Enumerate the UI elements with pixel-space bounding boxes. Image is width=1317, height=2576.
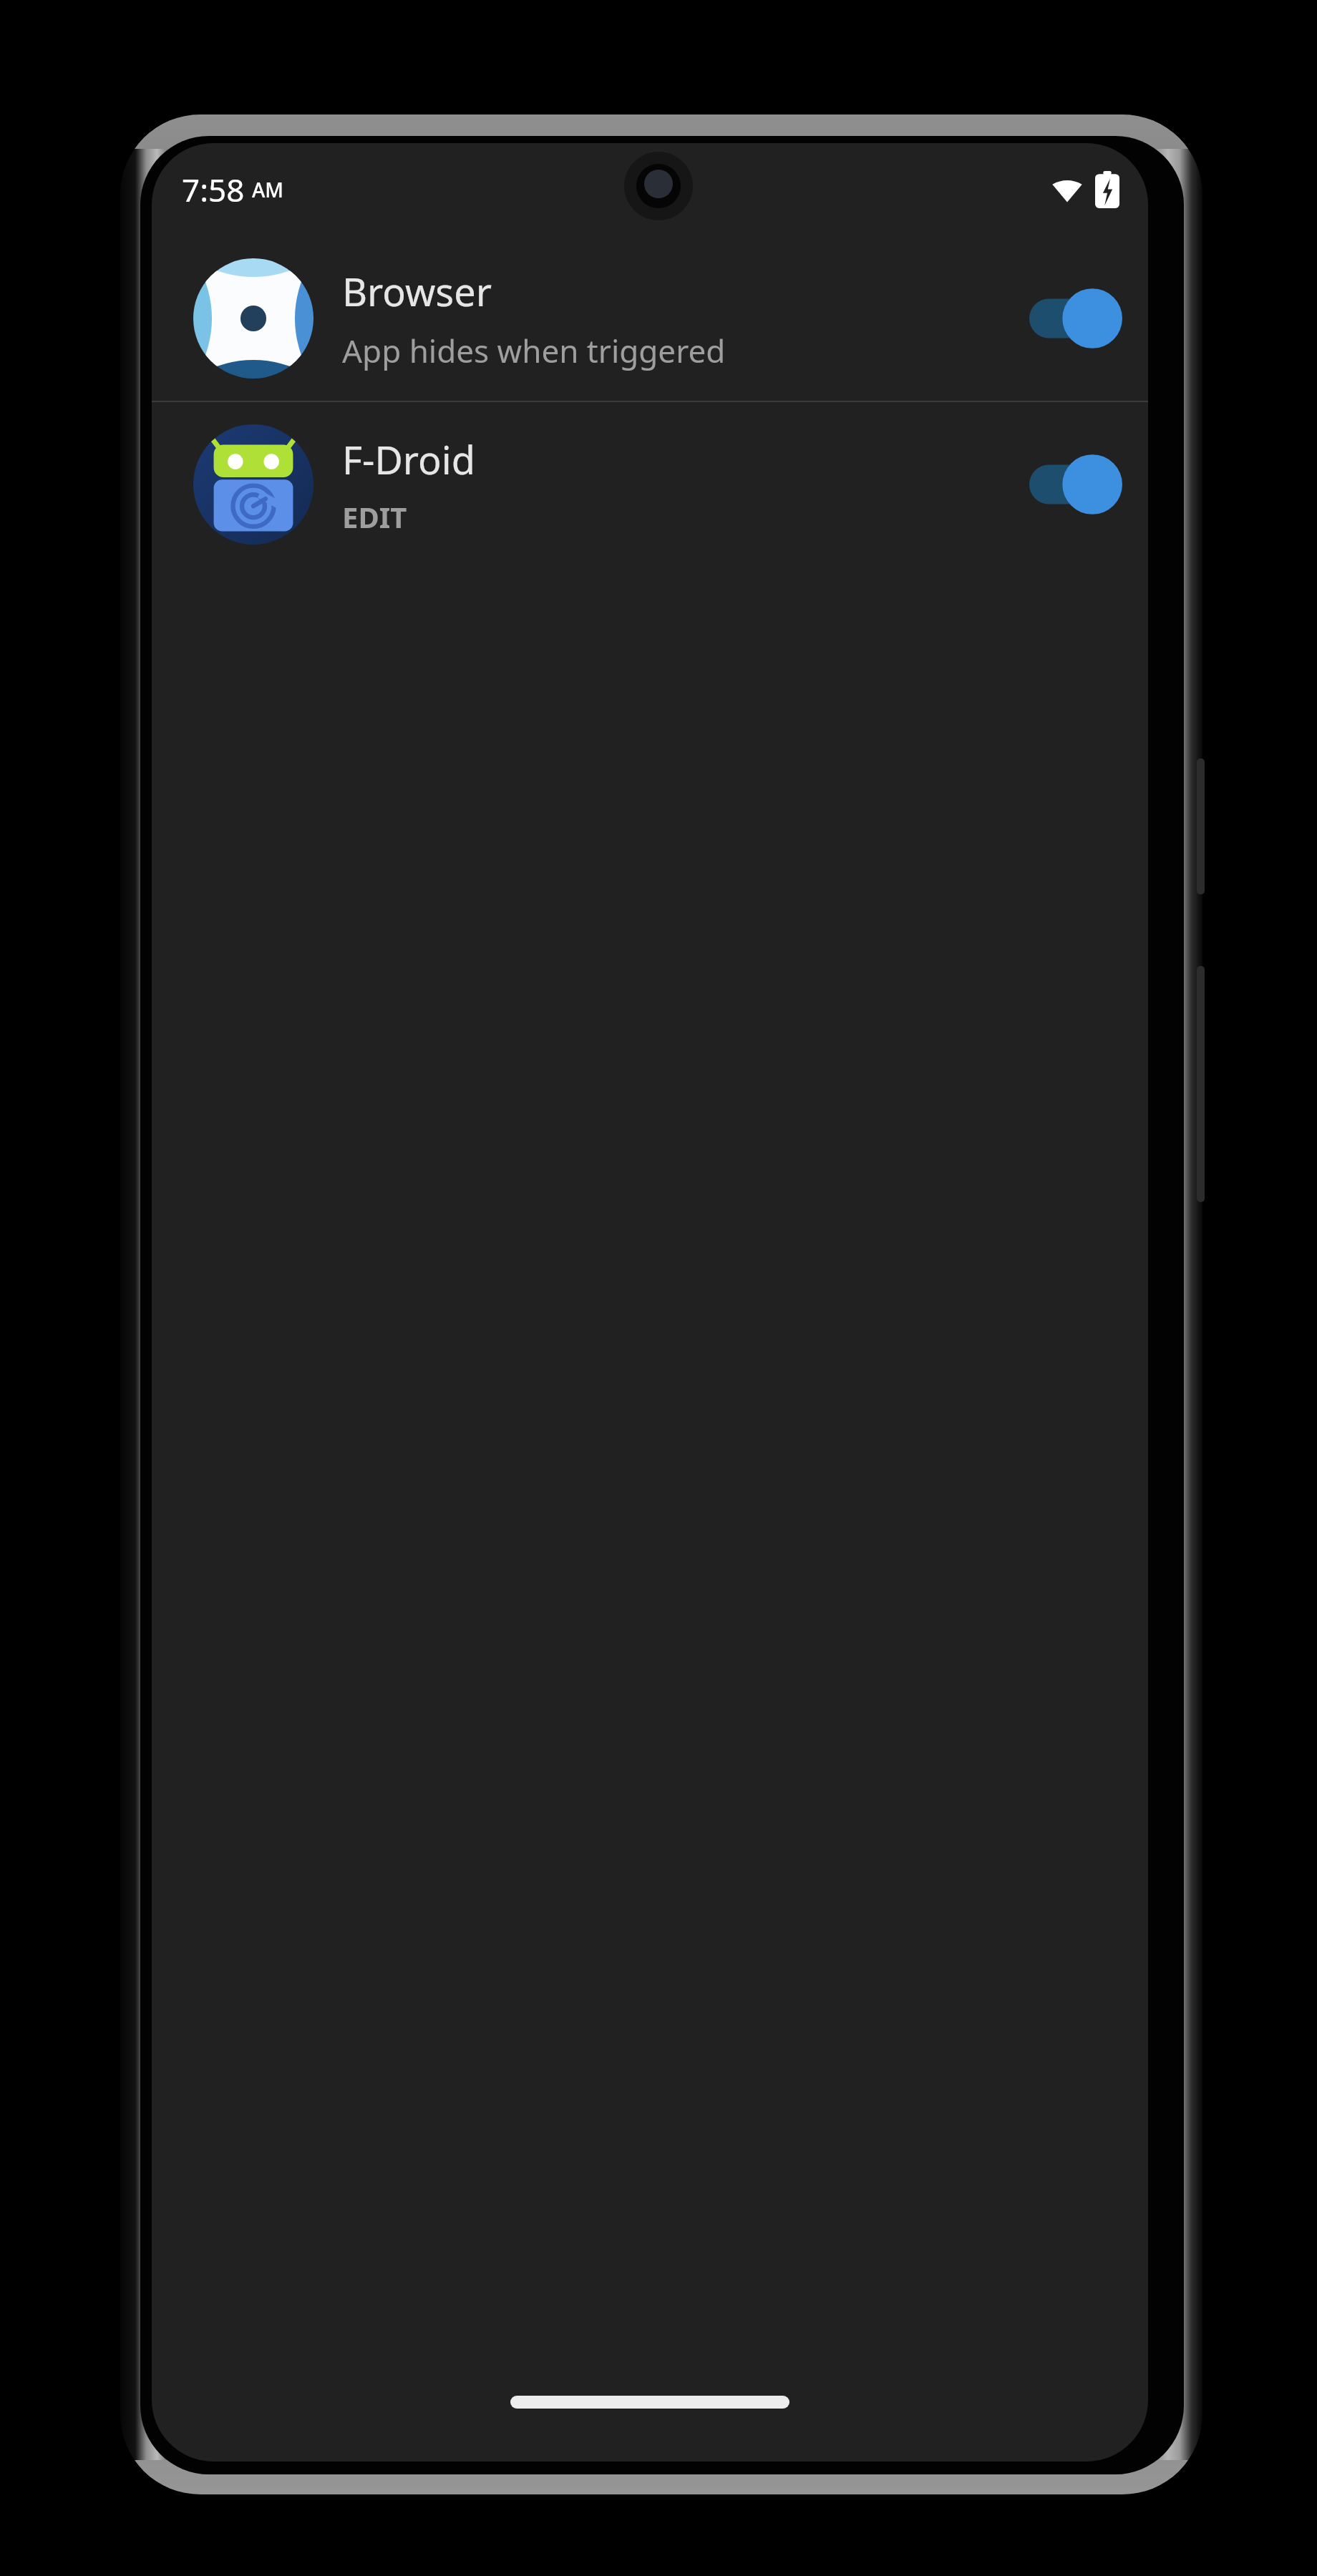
button[interactable]: Toggle F-Droid: [1029, 452, 1122, 517]
staticText: F-Droid: [342, 433, 475, 486]
button[interactable]: Toggle Browser: [1029, 286, 1122, 351]
other: Wi-Fi: [1051, 173, 1084, 206]
staticText: 7:58: [182, 168, 245, 211]
staticText: EDIT: [342, 497, 407, 536]
staticText: Browser: [342, 265, 492, 318]
staticText: AM: [252, 176, 284, 203]
button[interactable]: Browser: [152, 236, 1148, 401]
other: Battery charging: [1095, 171, 1119, 208]
staticText: App hides when triggered: [342, 329, 726, 372]
button[interactable]: F-Droid: [152, 402, 1148, 567]
